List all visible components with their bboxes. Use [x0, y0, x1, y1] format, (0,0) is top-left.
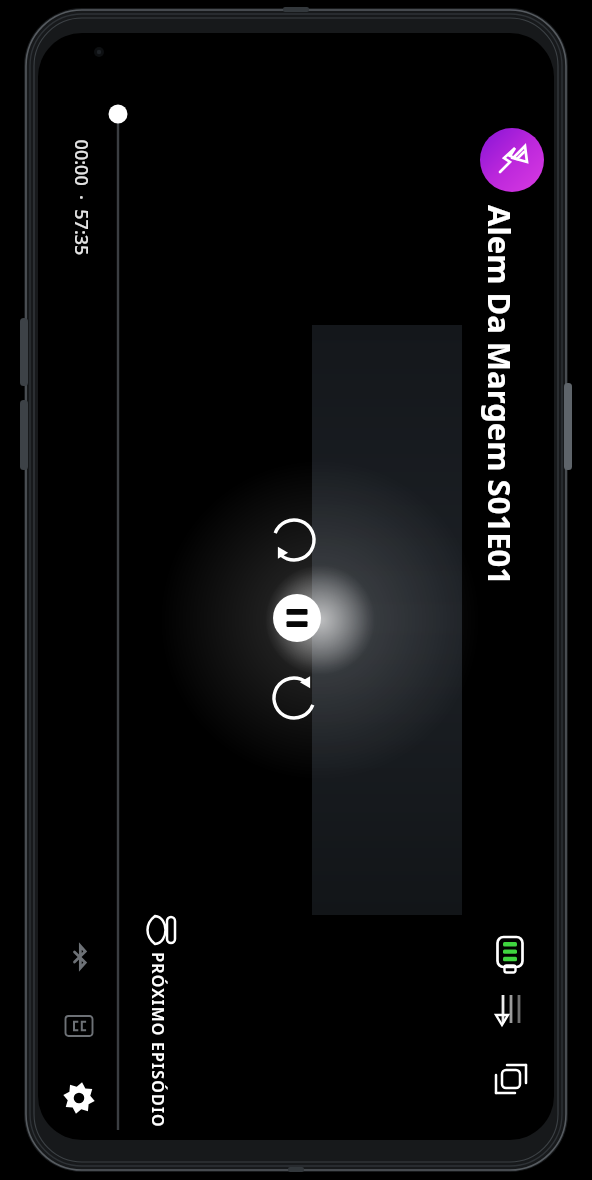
button[interactable]: Video quality — [484, 984, 538, 1042]
button[interactable]: Aspect ratio — [484, 1052, 540, 1108]
button[interactable]: Rewind 5 seconds — [268, 512, 324, 568]
button[interactable]: Forward 15 seconds — [268, 670, 324, 726]
button[interactable]: Seek bar — [100, 94, 138, 1134]
button[interactable]: Battery — [484, 924, 538, 980]
staticText: Alem Da Margem S01E01 — [479, 205, 521, 585]
button[interactable]: Settings — [52, 1070, 108, 1128]
staticText: 00:00 · 57:35 — [68, 139, 93, 255]
button[interactable]: Subtitles — [54, 998, 106, 1056]
button[interactable]: Bluetooth — [56, 930, 108, 986]
button[interactable]: Pause — [269, 590, 327, 648]
button[interactable] — [132, 900, 182, 1140]
button[interactable]: Boost playback — [480, 128, 544, 192]
staticText: PRÓXIMO EPISÓDIO — [147, 952, 169, 1128]
